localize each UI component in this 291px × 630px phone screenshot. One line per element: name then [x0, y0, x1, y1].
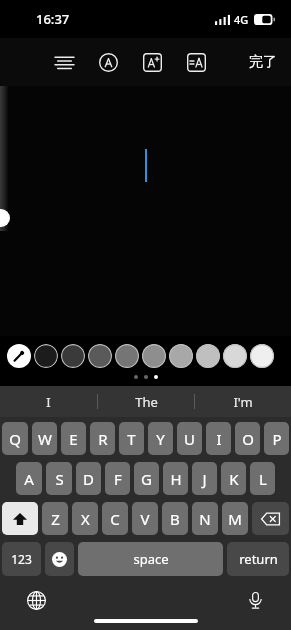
- staticText: Z: [51, 509, 60, 529]
- button[interactable]: Handle: [0, 209, 10, 227]
- staticText: T: [127, 429, 136, 449]
- button[interactable]: D: [76, 462, 101, 495]
- button[interactable]: I'm: [195, 386, 291, 417]
- staticText: E: [69, 429, 78, 449]
- button[interactable]: T: [119, 422, 144, 455]
- staticText: C: [110, 509, 120, 529]
- button[interactable]: Font: [93, 47, 123, 77]
- staticText: 4G: [234, 12, 249, 27]
- staticText: L: [259, 469, 267, 489]
- button[interactable]: space: [78, 542, 223, 576]
- staticText: A: [24, 469, 34, 489]
- button[interactable]: Shift: [2, 502, 38, 535]
- staticText: B: [170, 509, 180, 529]
- button[interactable]: B: [162, 502, 188, 535]
- button[interactable]: G: [134, 462, 159, 495]
- button[interactable]: 完了: [235, 45, 291, 79]
- button[interactable]: V: [132, 502, 158, 535]
- button[interactable]: U: [177, 422, 202, 455]
- staticText: S: [55, 469, 64, 489]
- button[interactable]: The: [98, 386, 194, 417]
- staticText: 16:37: [36, 10, 70, 28]
- button[interactable]: X: [72, 502, 98, 535]
- button[interactable]: C: [102, 502, 128, 535]
- staticText: O: [242, 429, 254, 449]
- staticText: 123: [11, 551, 32, 567]
- button[interactable]: I: [206, 422, 231, 455]
- staticText: G: [141, 469, 152, 489]
- staticText: M: [228, 509, 242, 529]
- staticText: N: [199, 509, 211, 529]
- button[interactable]: R: [90, 422, 115, 455]
- staticText: U: [184, 429, 195, 449]
- staticText: F: [114, 469, 122, 489]
- staticText: I: [216, 429, 222, 449]
- staticText: I: [46, 393, 51, 411]
- staticText: return: [239, 550, 278, 568]
- button[interactable]: Y: [148, 422, 173, 455]
- button[interactable]: return: [227, 542, 289, 576]
- staticText: Q: [9, 429, 21, 449]
- button[interactable]: E: [61, 422, 86, 455]
- staticText: R: [98, 429, 108, 449]
- button[interactable]: Align text: [49, 47, 79, 77]
- button[interactable]: O: [235, 422, 260, 455]
- button[interactable]: A: [16, 462, 42, 495]
- button[interactable]: L: [250, 462, 275, 495]
- button[interactable]: Colour: [115, 344, 139, 368]
- staticText: V: [140, 509, 150, 529]
- staticText: W: [38, 429, 52, 449]
- button[interactable]: S: [46, 462, 72, 495]
- staticText: Y: [156, 429, 165, 449]
- button[interactable]: Z: [42, 502, 68, 535]
- button[interactable]: Eyedropper: [7, 344, 31, 368]
- button[interactable]: K: [221, 462, 246, 495]
- staticText: 完了: [249, 53, 277, 71]
- staticText: space: [133, 550, 169, 568]
- button[interactable]: N: [192, 502, 218, 535]
- button[interactable]: P: [264, 422, 289, 455]
- button[interactable]: Colour: [142, 344, 166, 368]
- button[interactable]: Colour: [34, 344, 58, 368]
- button[interactable]: Decrease text size: [181, 47, 211, 77]
- button[interactable]: M: [222, 502, 248, 535]
- staticText: P: [272, 429, 282, 449]
- button[interactable]: I: [0, 386, 97, 417]
- button[interactable]: Change keyboard language: [22, 586, 50, 614]
- button[interactable]: Colour: [196, 344, 220, 368]
- button[interactable]: H: [163, 462, 188, 495]
- staticText: I'm: [233, 393, 253, 411]
- staticText: X: [81, 509, 90, 529]
- button[interactable]: Colour: [88, 344, 112, 368]
- staticText: D: [83, 469, 94, 489]
- button[interactable]: Colour: [250, 344, 274, 368]
- staticText: J: [202, 469, 207, 489]
- button[interactable]: J: [192, 462, 217, 495]
- button[interactable]: W: [32, 422, 57, 455]
- button[interactable]: F: [105, 462, 130, 495]
- button[interactable]: Q: [2, 422, 28, 455]
- button[interactable]: Colour: [223, 344, 247, 368]
- button[interactable]: Colour: [61, 344, 85, 368]
- button[interactable]: Dictate: [241, 586, 269, 614]
- button[interactable]: 123: [2, 542, 41, 576]
- button[interactable]: Emoji: [45, 542, 74, 576]
- staticText: H: [170, 469, 182, 489]
- staticText: K: [229, 469, 239, 489]
- button[interactable]: Colour: [169, 344, 193, 368]
- button[interactable]: Increase text size: [137, 47, 167, 77]
- button[interactable]: Backspace: [252, 502, 289, 535]
- staticText: The: [135, 393, 158, 411]
